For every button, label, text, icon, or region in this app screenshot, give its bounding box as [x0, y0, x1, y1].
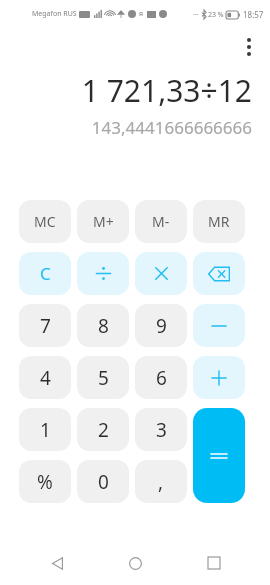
button[interactable]: 9 — [135, 304, 187, 347]
staticText: % — [37, 469, 53, 495]
button[interactable]: Home — [113, 541, 157, 585]
button[interactable]: 0 — [77, 460, 129, 503]
staticText: MC — [34, 212, 56, 231]
button[interactable]: 3 — [135, 408, 187, 451]
staticText: C — [40, 262, 51, 285]
button[interactable]: Recent apps — [192, 541, 236, 585]
staticText: 1 721,33÷12 — [16, 70, 252, 111]
staticText: 7 — [40, 313, 51, 339]
button[interactable]: % — [19, 460, 71, 503]
staticText: 8 — [98, 313, 109, 339]
staticText: 9 — [156, 313, 167, 339]
staticText: 23 % — [208, 10, 224, 20]
button[interactable]: MR — [193, 200, 245, 243]
staticText: 2 — [98, 417, 109, 443]
button[interactable]: Back — [35, 541, 79, 585]
button[interactable]: 8 — [77, 304, 129, 347]
staticText: 0 — [98, 469, 109, 495]
button[interactable]: 2 — [77, 408, 129, 451]
staticText: 1 — [40, 417, 51, 443]
button[interactable]: Minus — [193, 304, 245, 347]
staticText: ··· — [193, 10, 199, 20]
button[interactable] — [77, 252, 129, 295]
staticText: 3 — [156, 417, 167, 443]
button[interactable]: Equals — [193, 408, 245, 503]
button[interactable]: 6 — [135, 356, 187, 399]
button[interactable]: Plus — [193, 356, 245, 399]
staticText: 18:57 — [243, 9, 264, 20]
button[interactable]: M+ — [77, 200, 129, 243]
staticText: 4 — [40, 365, 51, 391]
button[interactable]: MC — [19, 200, 71, 243]
button[interactable]: 7 — [19, 304, 71, 347]
staticText: , — [158, 469, 164, 495]
staticText: M+ — [93, 212, 114, 231]
button[interactable]: 5 — [77, 356, 129, 399]
button[interactable]: C — [19, 252, 71, 295]
staticText: Megafon RUS — [32, 9, 77, 19]
staticText: 6 — [156, 365, 167, 391]
button[interactable]: 4 — [19, 356, 71, 399]
button[interactable]: More options — [232, 30, 266, 64]
button[interactable]: 1 — [19, 408, 71, 451]
staticText: M- — [152, 212, 170, 231]
staticText: я — [139, 9, 144, 19]
staticText: 143,4441666666666 — [16, 116, 252, 139]
staticText: 5 — [98, 365, 109, 391]
staticText: MR — [208, 212, 230, 231]
button[interactable]: , — [135, 460, 187, 503]
button[interactable]: Backspace — [193, 252, 245, 295]
button[interactable]: M- — [135, 200, 187, 243]
button[interactable] — [135, 252, 187, 295]
